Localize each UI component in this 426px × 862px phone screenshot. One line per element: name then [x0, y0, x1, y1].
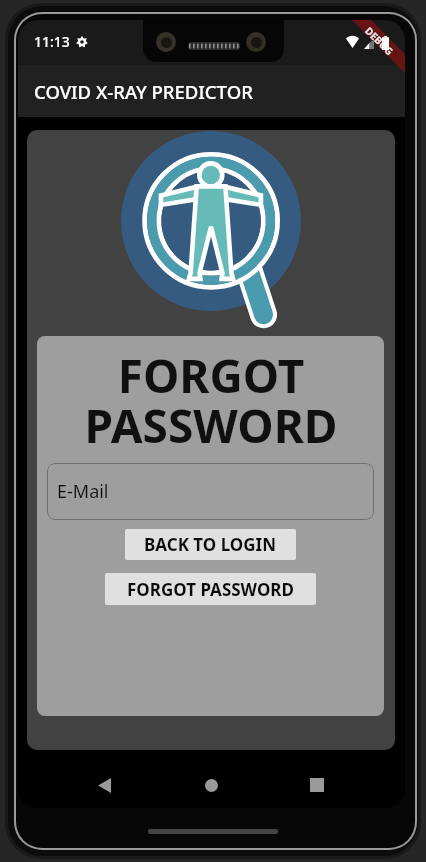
staticText: COVID X-RAY PREDICTOR: [34, 79, 253, 104]
staticText: FORGOT PASSWORD: [127, 578, 294, 601]
staticText: BACK TO LOGIN: [144, 533, 277, 556]
button[interactable]: Back: [82, 763, 126, 807]
button[interactable]: Home: [189, 763, 233, 807]
button[interactable]: BACK TO LOGIN: [125, 529, 296, 560]
staticText: E-Mail: [57, 479, 109, 504]
staticText: 11:13: [34, 32, 70, 51]
staticText: FORGOT PASSWORD: [84, 344, 338, 457]
button[interactable]: FORGOT PASSWORD: [105, 573, 316, 605]
button[interactable]: Recent apps: [295, 763, 339, 807]
button[interactable]: E-Mail: [47, 463, 374, 520]
staticText: DEBUG: [362, 24, 397, 58]
